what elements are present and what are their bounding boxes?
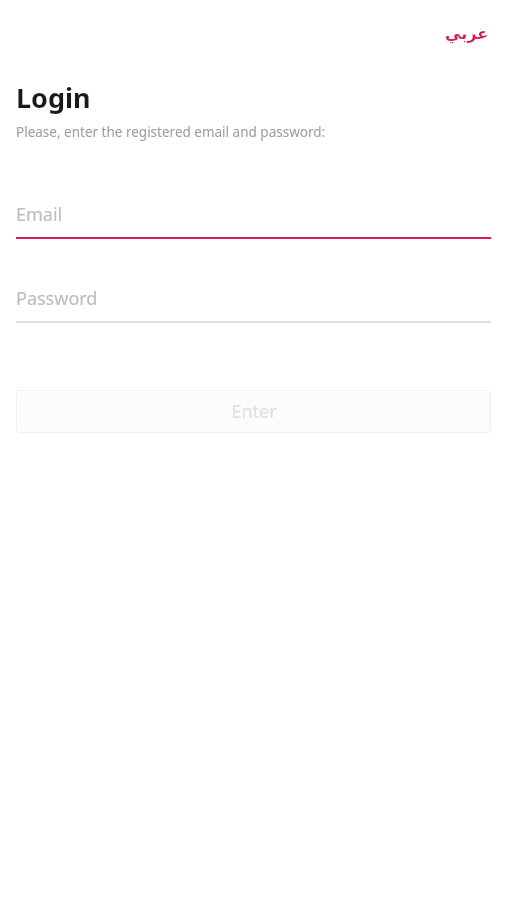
button[interactable]: Enter [16,390,491,433]
staticText: Login [16,79,91,116]
staticText: Please, enter the registered email and p… [16,123,326,141]
button[interactable]: عربي [443,22,491,45]
staticText: عربي [445,24,489,43]
staticText: Password [16,286,98,311]
button[interactable]: Email [0,199,507,239]
staticText: Email [16,202,63,227]
staticText: Enter [231,399,277,424]
button[interactable]: Password [0,283,507,323]
